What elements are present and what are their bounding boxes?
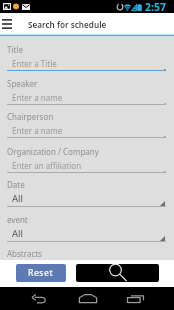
staticText: Date	[7, 179, 25, 190]
button[interactable]: event	[0, 213, 174, 243]
staticText: Chairperson	[7, 111, 54, 122]
button[interactable]: Recent apps	[118, 287, 153, 310]
staticText: Speaker	[7, 78, 38, 89]
button[interactable]: Home	[70, 287, 105, 310]
staticText: Enter a Title	[12, 58, 57, 69]
button[interactable]: Organization / Company	[0, 145, 174, 175]
staticText: All	[12, 227, 23, 240]
staticText: Enter an affiliation	[12, 160, 82, 171]
staticText: Organization / Company	[7, 146, 99, 157]
button[interactable]: Chairperson	[0, 110, 174, 140]
button[interactable]: Date	[0, 178, 174, 208]
button[interactable]: Open navigation menu	[0, 13, 15, 34]
staticText: Enter a name	[12, 125, 63, 136]
button[interactable]: Speaker	[0, 77, 174, 107]
button[interactable]: Search	[76, 264, 159, 282]
staticText: Search for schedule	[28, 19, 107, 30]
staticText: Reset	[28, 267, 54, 279]
button[interactable]: Reset	[16, 264, 66, 282]
staticText: Abstracts	[7, 248, 42, 259]
staticText: event	[7, 214, 28, 225]
staticText: Title	[7, 44, 23, 55]
staticText: All	[12, 192, 23, 205]
button[interactable]: Title	[0, 43, 174, 73]
staticText: 2:57	[145, 0, 166, 13]
button[interactable]: Back	[21, 287, 56, 310]
staticText: Enter a name	[12, 92, 63, 103]
